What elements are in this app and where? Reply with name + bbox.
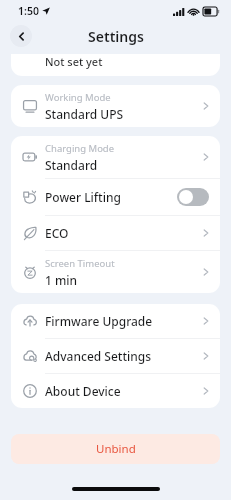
staticText: 1:50 (18, 4, 39, 18)
button[interactable]: Back (10, 25, 32, 47)
staticText: Advanced Settings (45, 348, 203, 364)
staticText: Charging Mode (45, 142, 115, 155)
button[interactable]: Power Lifting (11, 179, 220, 215)
staticText: Power Lifting (45, 189, 177, 205)
staticText: About Device (45, 383, 203, 399)
staticText: 1 min (45, 272, 78, 288)
staticText: ECO (45, 225, 203, 241)
button[interactable]: Charging Mode (11, 136, 220, 178)
button[interactable]: Not set yet (11, 54, 220, 76)
staticText: Working Mode (45, 91, 111, 104)
staticText: Standard UPS (45, 106, 124, 122)
staticText: Not set yet (45, 54, 103, 69)
button[interactable]: Working Mode (11, 85, 220, 127)
button[interactable]: Screen Timeout (11, 251, 220, 293)
button[interactable]: Advanced Settings (11, 339, 220, 373)
staticText: Settings (88, 27, 144, 46)
button[interactable]: Power Lifting toggle (177, 188, 209, 206)
staticText: Unbind (96, 441, 136, 457)
button[interactable]: ECO (11, 216, 220, 250)
staticText: Standard (45, 157, 98, 173)
button[interactable]: About Device (11, 374, 220, 408)
button[interactable]: Firmware Upgrade (11, 304, 220, 338)
staticText: Screen Timeout (45, 257, 115, 270)
button[interactable]: Unbind (11, 434, 220, 464)
staticText: Firmware Upgrade (45, 313, 203, 329)
